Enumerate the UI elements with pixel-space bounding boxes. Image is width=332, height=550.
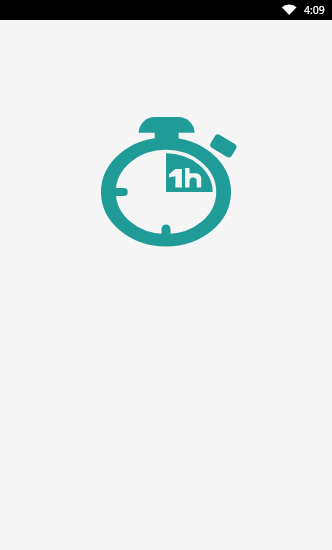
staticText: 4:09 — [304, 3, 325, 17]
